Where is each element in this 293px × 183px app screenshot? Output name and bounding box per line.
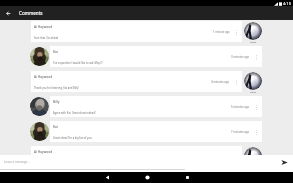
button[interactable]: Kai <box>50 46 262 67</box>
button[interactable]: Recents <box>178 172 196 183</box>
button[interactable]: Ai Haywood <box>31 71 242 92</box>
staticText: Thank you for listening, Kai and Billy! <box>34 86 79 90</box>
staticText: Leave a message... <box>4 160 30 164</box>
staticText: HOST <box>250 40 257 43</box>
button[interactable]: Back <box>98 172 116 183</box>
staticText: 5 minutes ago <box>231 105 250 109</box>
button[interactable]: Billy <box>50 96 262 117</box>
staticText: 7 minutes ago <box>231 130 250 134</box>
staticText: 3 minutes ago <box>231 55 250 59</box>
button[interactable]: Kai <box>50 121 262 142</box>
button[interactable]: More options <box>233 29 239 35</box>
button[interactable]: More options <box>253 129 259 135</box>
button[interactable]: Ai Haywood <box>31 21 242 42</box>
staticText: Agree with Kai. Great show indeed! <box>53 111 96 115</box>
staticText: Comments <box>19 10 43 16</box>
staticText: Ai Haywood <box>34 150 53 154</box>
button[interactable]: More options <box>253 104 259 110</box>
staticText: 4 minutes ago <box>211 80 230 84</box>
button[interactable]: Home <box>138 172 156 183</box>
staticText: Kai <box>53 125 58 129</box>
button[interactable]: Send <box>279 157 289 167</box>
staticText: HOST <box>250 90 257 93</box>
staticText: Billy <box>53 100 60 104</box>
staticText: 1 minute ago <box>213 30 230 34</box>
staticText: I've a question I would like to ask. May… <box>53 61 103 65</box>
button[interactable]: Ai Haywood <box>31 146 242 167</box>
button[interactable]: Back <box>3 8 14 19</box>
staticText: Kai <box>53 50 58 54</box>
staticText: 4:15 <box>283 1 291 6</box>
staticText: Ai Haywood <box>34 25 53 29</box>
staticText: Ai Haywood <box>34 75 53 79</box>
staticText: Great show! I'm a big fan of you. <box>53 136 93 140</box>
staticText: Sure that. Go ahead <box>34 36 59 40</box>
button[interactable]: More options <box>233 79 239 85</box>
button[interactable]: More options <box>253 54 259 60</box>
